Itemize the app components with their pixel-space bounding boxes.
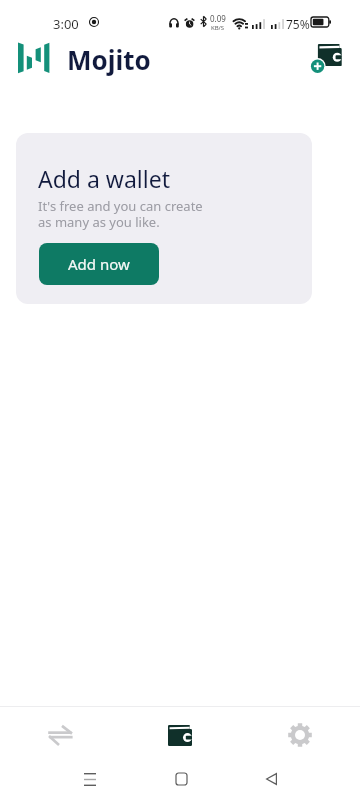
staticText: Add a wallet — [38, 163, 170, 194]
staticText: Mojito — [67, 42, 151, 77]
staticText: KB/S — [211, 24, 225, 32]
staticText: It's free and you can create as many as … — [38, 197, 203, 230]
button[interactable]: Settings — [240, 707, 360, 763]
button[interactable]: Add wallet — [296, 30, 348, 82]
staticText: 75% — [286, 16, 310, 32]
button[interactable]: Add now — [39, 243, 159, 285]
staticText: 3:00 — [53, 15, 79, 33]
button[interactable]: Home — [161, 762, 201, 796]
button[interactable]: Add a wallet — [16, 133, 312, 304]
staticText: Add now — [68, 254, 130, 274]
staticText: 0.09 — [210, 13, 226, 24]
button[interactable]: Wallets — [120, 707, 240, 763]
button[interactable]: Transfers — [0, 707, 120, 763]
button[interactable]: Recent apps — [70, 762, 110, 796]
button[interactable]: Back — [251, 762, 291, 796]
